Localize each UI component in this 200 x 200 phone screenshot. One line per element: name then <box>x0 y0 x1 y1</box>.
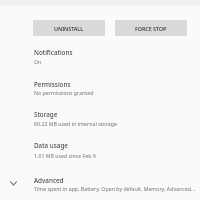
button[interactable]: Permissions <box>0 74 200 104</box>
button[interactable]: FORCE STOP <box>115 20 187 36</box>
staticText: 1.01 MB used since Feb 9 <box>34 152 96 159</box>
other: Expand advanced settings <box>10 181 17 186</box>
button[interactable]: Notifications <box>0 42 200 72</box>
staticText: Permissions <box>34 80 71 89</box>
button[interactable]: UNINSTALL <box>33 20 105 36</box>
staticText: Notifications <box>34 48 73 57</box>
staticText: FORCE STOP <box>135 25 167 32</box>
staticText: No permissions granted <box>34 89 94 96</box>
staticText: Advanced <box>34 176 64 185</box>
button[interactable]: Storage <box>0 104 200 134</box>
staticText: Storage <box>34 110 58 119</box>
button[interactable]: Advanced <box>0 172 200 200</box>
button[interactable]: Data usage <box>0 136 200 168</box>
staticText: UNINSTALL <box>54 25 84 32</box>
staticText: 60.22 MB used in internal storage <box>34 120 117 127</box>
staticText: On <box>34 58 42 65</box>
staticText: Time spent in app, Battery, Open by defa… <box>34 185 196 192</box>
staticText: Data usage <box>34 141 68 150</box>
